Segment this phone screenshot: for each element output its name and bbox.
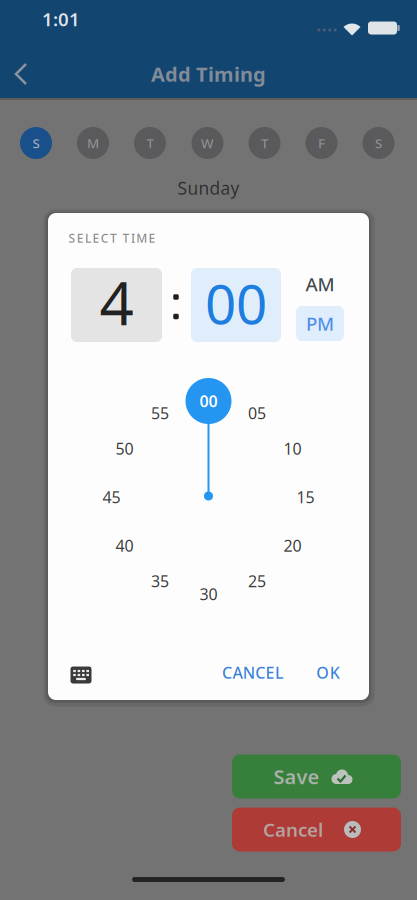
staticText: T	[261, 134, 268, 152]
staticText: T	[146, 134, 153, 152]
button[interactable]: AM	[296, 269, 344, 299]
staticText: Save	[273, 763, 319, 790]
staticText: SELECT TIME	[68, 230, 155, 246]
staticText: 10	[283, 438, 301, 459]
staticText: OK	[316, 662, 340, 683]
button[interactable]: PM	[296, 306, 344, 341]
staticText: S	[375, 134, 382, 152]
staticText: 05	[248, 402, 266, 424]
staticText: 25	[248, 570, 266, 592]
staticText: 30	[199, 583, 217, 605]
staticText: 20	[283, 535, 301, 556]
staticText: 00	[199, 390, 217, 412]
staticText: S	[32, 134, 39, 152]
staticText: 40	[115, 535, 133, 556]
staticText: Cancel	[263, 817, 323, 842]
button[interactable]: 00	[191, 268, 281, 342]
button[interactable]: OK	[308, 654, 348, 690]
staticText: PM	[306, 311, 334, 336]
button[interactable]: W	[191, 127, 223, 159]
button[interactable]: 4	[71, 268, 162, 342]
staticText: Add Timing	[151, 61, 266, 87]
button[interactable]: Cancel	[232, 807, 401, 851]
staticText: 00	[199, 389, 217, 411]
button[interactable]: CANCEL	[213, 654, 293, 690]
staticText: CANCEL	[222, 662, 284, 683]
staticText: F	[318, 134, 325, 152]
staticText: Sunday	[177, 176, 239, 199]
button[interactable]: Save	[232, 754, 401, 798]
staticText: W	[201, 134, 214, 152]
button[interactable]: F	[305, 127, 337, 159]
staticText: AM	[305, 272, 334, 296]
staticText: M	[87, 134, 99, 152]
staticText: 55	[151, 402, 169, 424]
staticText: 45	[102, 486, 120, 508]
button[interactable]: S	[362, 127, 394, 159]
staticText: 4	[99, 262, 133, 342]
button[interactable]: T	[248, 127, 280, 159]
staticText: 1:01	[42, 7, 80, 31]
button[interactable]: S	[20, 127, 52, 159]
staticText: 00	[205, 267, 267, 339]
button[interactable]: Switch to keyboard input	[69, 665, 93, 685]
button[interactable]: Back	[7, 59, 37, 89]
button[interactable]: T	[134, 127, 166, 159]
button[interactable]: M	[77, 127, 109, 159]
staticText: 15	[296, 486, 314, 508]
staticText: 35	[151, 570, 169, 592]
staticText: 50	[115, 438, 133, 459]
